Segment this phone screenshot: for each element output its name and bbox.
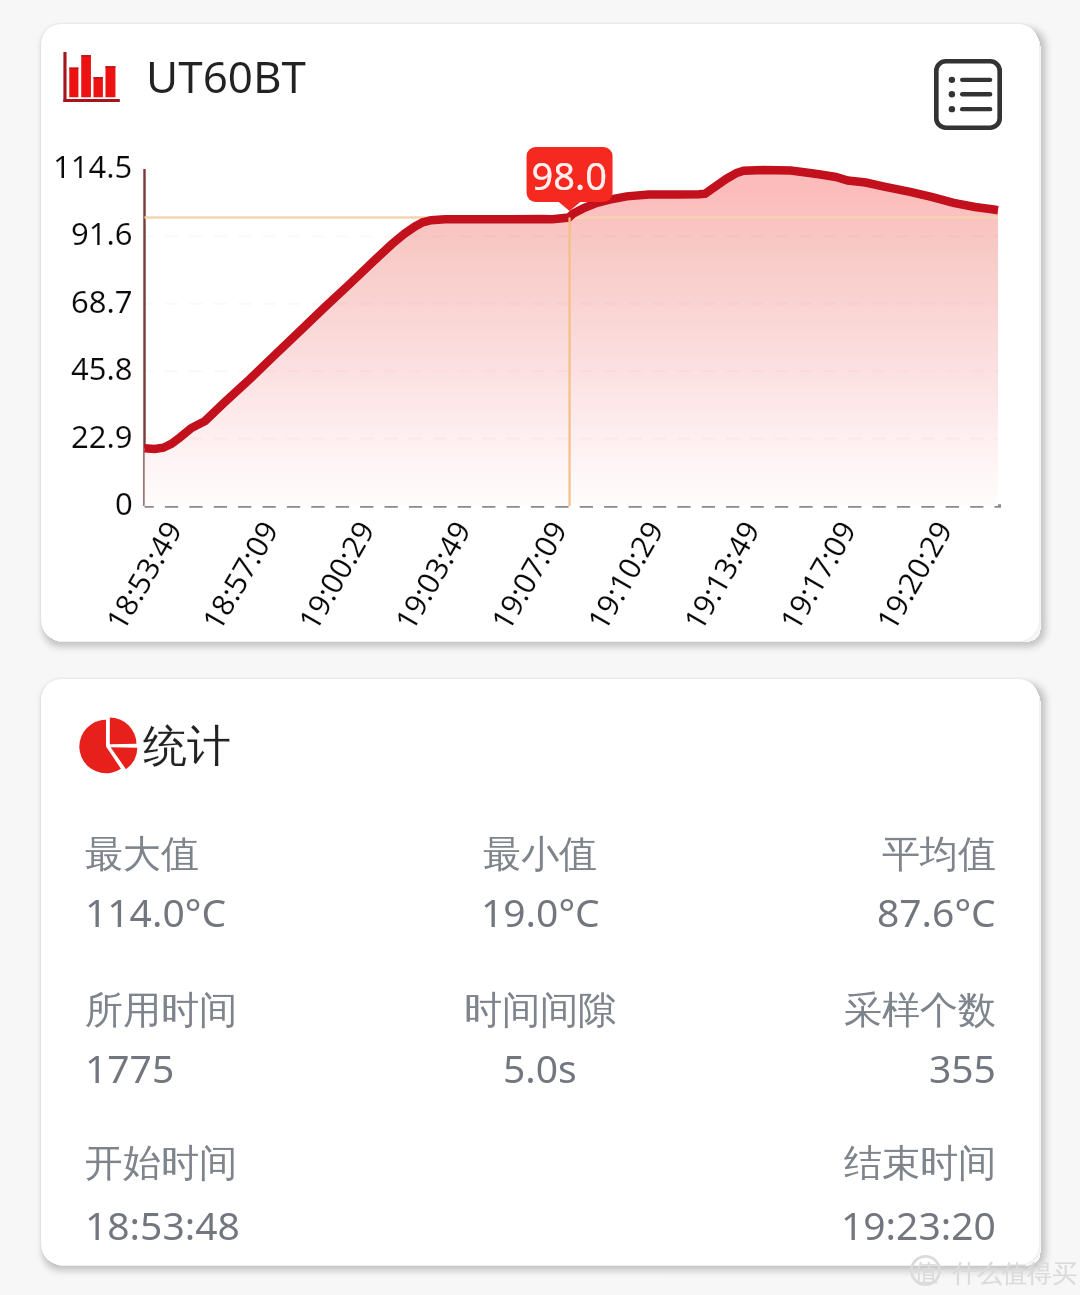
staticText: 开始时间 xyxy=(85,1139,237,1187)
staticText: 时间间隙 xyxy=(464,986,616,1034)
staticText: 结束时间 xyxy=(844,1139,996,1187)
button[interactable]: List xyxy=(929,53,1007,135)
staticText: 平均值 xyxy=(882,830,996,878)
staticText: 值 xyxy=(914,1258,938,1288)
staticText: 最小值 xyxy=(483,830,597,878)
button[interactable]: 统计 xyxy=(41,679,1039,1265)
staticText: 87.6°C xyxy=(877,885,996,938)
staticText: 355 xyxy=(929,1041,996,1094)
staticText: 18:53:48 xyxy=(85,1198,240,1251)
staticText: 什么值得买 xyxy=(952,1258,1077,1289)
staticText: 采样个数 xyxy=(844,986,996,1034)
staticText: 统计 xyxy=(143,719,231,774)
staticText: 19.0°C xyxy=(481,885,600,938)
staticText: 1775 xyxy=(85,1041,175,1094)
staticText: 最大值 xyxy=(85,830,199,878)
staticText: 5.0s xyxy=(503,1041,577,1094)
staticText: 所用时间 xyxy=(85,986,237,1034)
staticText: 19:23:20 xyxy=(841,1198,996,1251)
staticText: UT60BT xyxy=(146,46,307,106)
button[interactable]: UT60BT xyxy=(41,24,1039,641)
staticText: 114.0°C xyxy=(85,885,227,938)
